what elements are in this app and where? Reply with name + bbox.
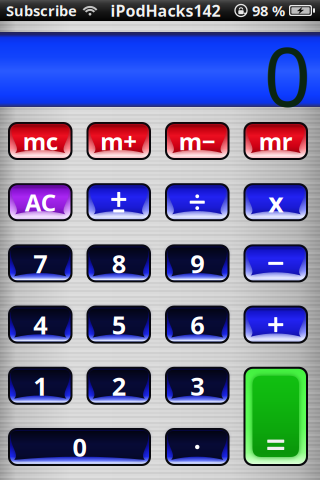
button[interactable]: 4 xyxy=(8,306,72,344)
button[interactable]: 0 xyxy=(8,428,151,466)
button[interactable]: Minus xyxy=(243,244,308,282)
button[interactable]: 9 xyxy=(165,244,229,282)
button[interactable]: m− xyxy=(165,122,229,160)
staticText: 6 xyxy=(190,308,204,341)
staticText: 3 xyxy=(190,369,204,403)
staticText: mr xyxy=(259,125,293,157)
button[interactable]: 3 xyxy=(165,367,229,405)
button[interactable]: mr xyxy=(243,122,308,160)
button[interactable]: 2 xyxy=(86,367,151,405)
staticText: 5 xyxy=(112,308,126,341)
button[interactable]: x xyxy=(243,183,308,221)
button[interactable]: 5 xyxy=(86,306,151,344)
staticText: 1 xyxy=(33,369,47,403)
staticText: Subscribe xyxy=(6,1,77,20)
staticText: 98 % xyxy=(252,1,285,20)
button[interactable]: Equals xyxy=(243,367,308,466)
staticText: 0 xyxy=(72,430,86,464)
button[interactable]: 8 xyxy=(86,244,151,282)
button[interactable]: AC xyxy=(8,183,72,221)
staticText: 2 xyxy=(112,369,126,403)
staticText: 9 xyxy=(190,247,204,280)
button[interactable]: Plus or minus xyxy=(86,183,151,221)
staticText: m+ xyxy=(100,125,137,157)
staticText: iPodHacks142 xyxy=(110,0,220,21)
button[interactable]: 1 xyxy=(8,367,72,405)
staticText: m− xyxy=(179,125,216,157)
staticText: x xyxy=(268,184,283,220)
staticText: 0 xyxy=(264,20,311,129)
button[interactable]: m+ xyxy=(86,122,151,160)
button[interactable]: Plus xyxy=(243,306,308,344)
button[interactable]: Divide xyxy=(165,183,229,221)
button[interactable]: Decimal point xyxy=(165,428,229,466)
button[interactable]: 6 xyxy=(165,306,229,344)
staticText: mc xyxy=(23,125,58,157)
staticText: AC xyxy=(25,186,56,218)
button[interactable]: mc xyxy=(8,122,72,160)
button[interactable]: 7 xyxy=(8,244,72,282)
staticText: 7 xyxy=(33,247,47,280)
staticText: 4 xyxy=(33,308,47,341)
button[interactable]: Subscribe xyxy=(6,1,97,20)
staticText: 8 xyxy=(112,247,126,280)
